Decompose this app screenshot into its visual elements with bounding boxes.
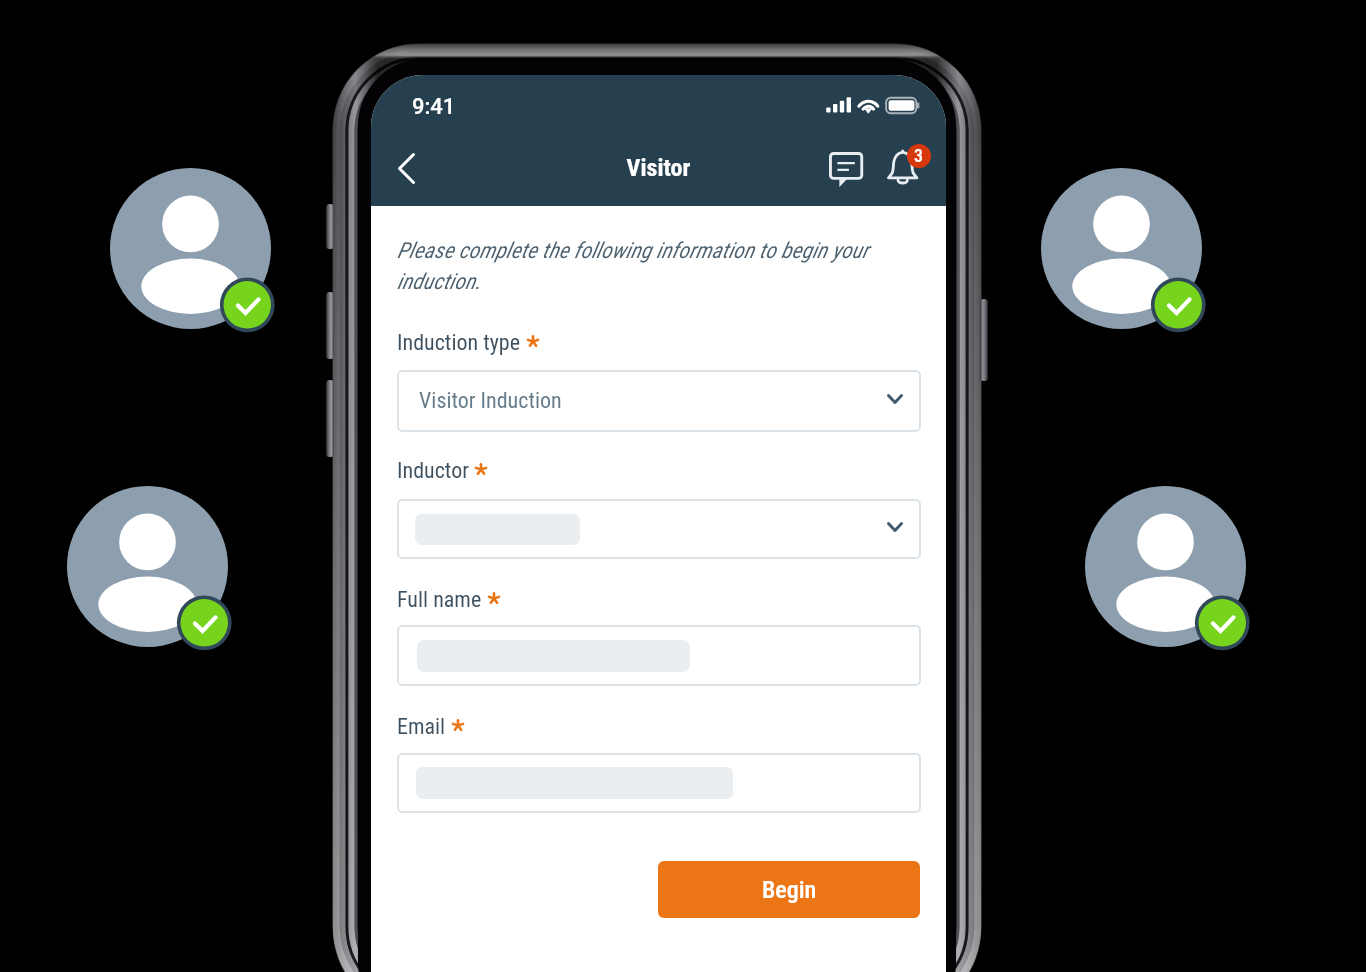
- staticText: Full name: [397, 587, 482, 613]
- staticText: Visitor: [371, 154, 946, 182]
- staticText: Visitor Induction: [419, 388, 562, 414]
- staticText: 9:41: [412, 94, 456, 120]
- staticText: Induction type: [397, 330, 521, 356]
- button[interactable]: Visitor Induction: [397, 370, 921, 432]
- button[interactable]: Back: [380, 142, 432, 194]
- button[interactable]: Notifications: [879, 140, 927, 194]
- button[interactable]: [397, 499, 921, 559]
- staticText: Email: [397, 714, 446, 740]
- button[interactable]: Messages: [821, 140, 872, 194]
- button[interactable]: Begin: [658, 861, 920, 918]
- staticText: Begin: [762, 876, 817, 904]
- button[interactable]: [397, 753, 921, 813]
- button[interactable]: [397, 625, 921, 686]
- staticText: 3: [914, 145, 924, 166]
- staticText: Inductor: [397, 458, 469, 484]
- staticText: Please complete the following informatio…: [397, 238, 897, 294]
